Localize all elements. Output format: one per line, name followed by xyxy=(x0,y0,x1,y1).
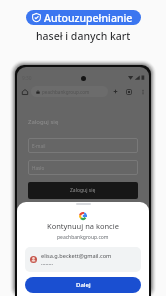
other: Google xyxy=(79,212,87,220)
staticText: •••••••• xyxy=(41,262,54,267)
staticText: Autouzupełnianie xyxy=(44,11,133,25)
button[interactable]: Zaloguj się xyxy=(28,182,138,199)
button[interactable]: Autouzupełnianie xyxy=(26,10,141,25)
button[interactable]: Dalej xyxy=(25,277,141,293)
staticText: Zaloguj się xyxy=(70,187,96,194)
staticText: E-mail xyxy=(32,143,46,149)
button[interactable]: E-mail xyxy=(28,138,138,153)
staticText: peachbankgroup.com xyxy=(57,234,109,241)
button[interactable]: Hasło xyxy=(28,160,138,175)
staticText: Dalej xyxy=(76,281,91,289)
other: More options xyxy=(141,89,145,95)
staticText: Kontynuuj na koncie xyxy=(47,221,119,231)
staticText: haseł i danych kart xyxy=(36,29,131,43)
staticText: peachbankgroup.com xyxy=(42,89,90,95)
other: Tabs xyxy=(126,89,132,95)
staticText: elisa.g.beckett@gmail.com xyxy=(41,252,112,260)
other: New tab xyxy=(113,89,118,94)
other: Home xyxy=(22,89,28,95)
staticText: Zaloguj się xyxy=(28,118,59,126)
button[interactable]: elisa.g.beckett@gmail.com xyxy=(25,247,141,272)
button[interactable]: peachbankgroup.com xyxy=(31,86,108,97)
staticText: Hasło xyxy=(32,165,45,171)
